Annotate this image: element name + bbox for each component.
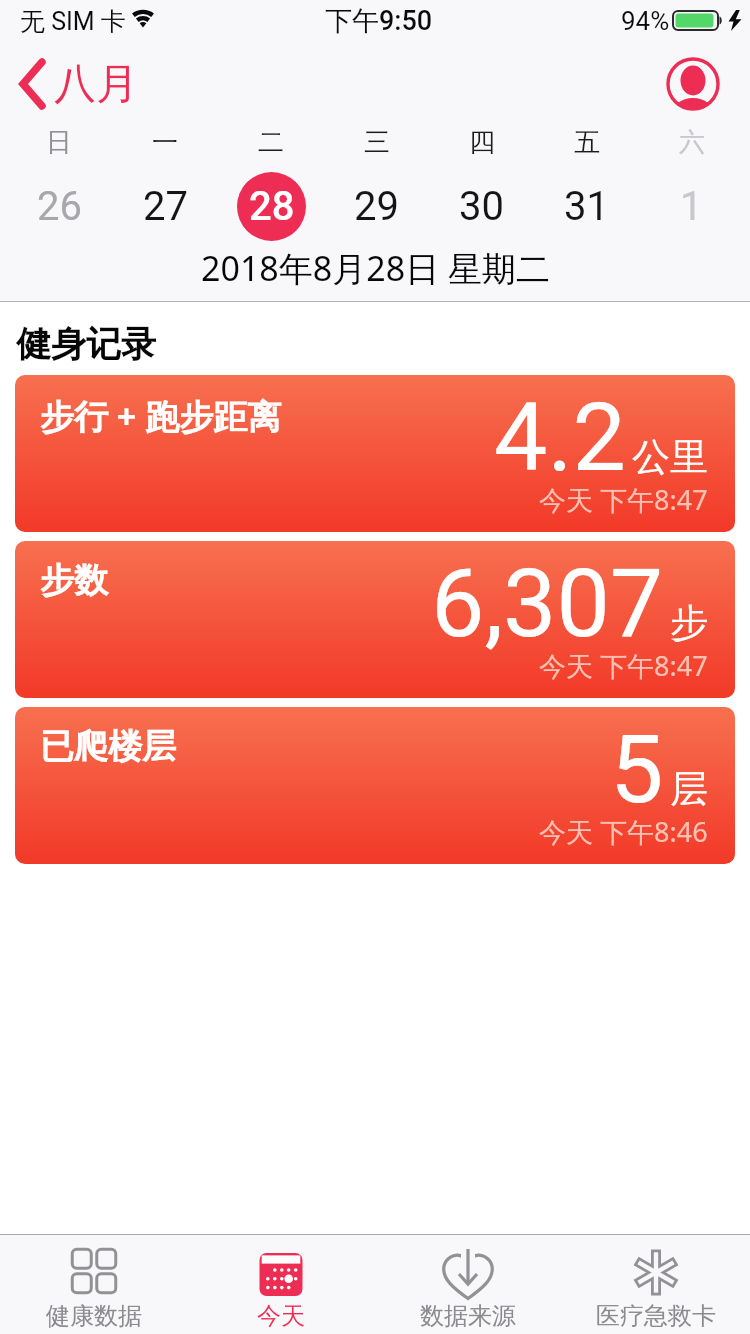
button[interactable]: 1	[680, 183, 703, 230]
staticText: 31	[564, 183, 609, 230]
staticText: 29	[354, 183, 399, 230]
button[interactable]	[18, 58, 48, 110]
button[interactable]: 30	[459, 183, 504, 230]
staticText: 下午9:50	[325, 4, 433, 38]
staticText: 四	[469, 126, 495, 156]
staticText: 六	[679, 126, 705, 156]
staticText: 三	[364, 126, 390, 156]
staticText: 步行 + 跑步距离	[40, 393, 282, 439]
staticText: 2018年8月28日 星期二	[201, 245, 550, 289]
staticText: 数据来源	[420, 1301, 516, 1331]
staticText: 94%	[621, 6, 670, 36]
staticText: 今天	[257, 1301, 305, 1331]
button[interactable]: 医疗急救卡	[562, 1234, 750, 1334]
staticText: 1	[680, 183, 703, 230]
staticText: 八月	[54, 58, 138, 110]
button[interactable]: 步行 + 跑步距离	[15, 375, 735, 532]
staticText: 公里	[632, 433, 708, 481]
staticText: 5	[610, 714, 664, 825]
button[interactable]: 27	[143, 183, 188, 230]
staticText: 健康数据	[46, 1301, 142, 1331]
button[interactable]: 步数	[15, 541, 735, 698]
staticText: 步	[670, 599, 708, 647]
button[interactable]: 已爬楼层	[15, 707, 735, 864]
button[interactable]	[666, 57, 720, 111]
staticText: 今天 下午8:47	[539, 647, 708, 684]
staticText: 26	[37, 183, 82, 230]
staticText: 无 SIM 卡	[20, 6, 126, 37]
button[interactable]: 今天	[187, 1234, 374, 1334]
staticText: 日	[46, 126, 72, 156]
staticText: 30	[459, 183, 504, 230]
staticText: 五	[574, 126, 600, 156]
button[interactable]: 28	[237, 172, 306, 241]
staticText: 步数	[40, 559, 108, 602]
staticText: 27	[143, 183, 188, 230]
staticText: 已爬楼层	[40, 725, 176, 768]
staticText: 一	[152, 126, 178, 156]
staticText: 今天 下午8:46	[539, 813, 708, 850]
staticText: 医疗急救卡	[596, 1301, 716, 1331]
button[interactable]: 健康数据	[0, 1234, 187, 1334]
staticText: 6,307	[431, 548, 664, 659]
button[interactable]: 26	[37, 183, 82, 230]
button[interactable]: 31	[564, 183, 609, 230]
button[interactable]: 八月	[54, 58, 214, 110]
staticText: 二	[258, 126, 284, 156]
button[interactable]: 数据来源	[374, 1234, 562, 1334]
staticText: 28	[249, 183, 295, 230]
staticText: 今天 下午8:47	[539, 481, 708, 518]
staticText: 健身记录	[16, 322, 156, 366]
staticText: 4.2	[494, 382, 626, 493]
staticText: 层	[670, 765, 708, 813]
button[interactable]: 29	[354, 183, 399, 230]
